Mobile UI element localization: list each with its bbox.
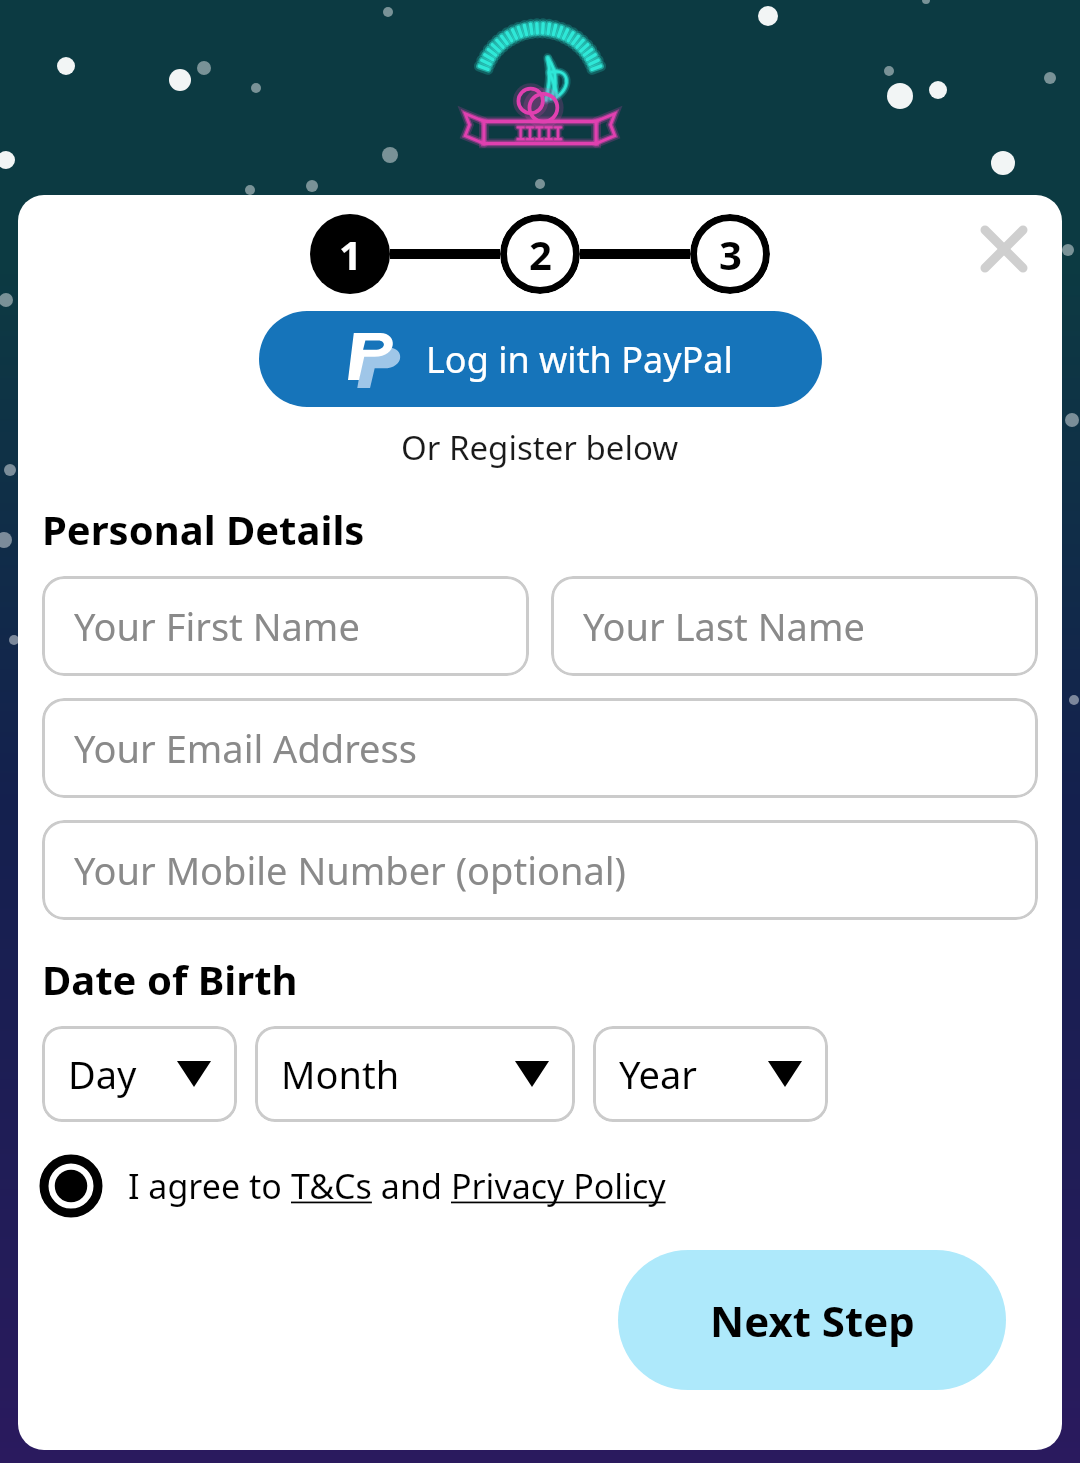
staticText: Personal Details xyxy=(42,502,365,556)
staticText: I agree to xyxy=(128,1163,291,1209)
button[interactable]: Your First Name xyxy=(42,576,529,676)
button[interactable]: Month xyxy=(255,1026,575,1122)
button[interactable]: 2 xyxy=(500,214,580,294)
staticText: Year xyxy=(619,1048,698,1100)
button[interactable]: Your Mobile Number (optional) xyxy=(42,820,1038,920)
staticText: Log in with PayPal xyxy=(426,335,733,384)
staticText: Date of Birth xyxy=(42,952,298,1006)
staticText: Your Email Address xyxy=(74,722,417,774)
staticText: Month xyxy=(281,1048,400,1100)
staticText: Your Mobile Number (optional) xyxy=(74,844,626,896)
button[interactable]: Privacy Policy xyxy=(451,1163,666,1209)
staticText: 3 xyxy=(719,227,742,281)
button[interactable]: Year xyxy=(593,1026,828,1122)
button[interactable]: Your Email Address xyxy=(42,698,1038,798)
staticText: and xyxy=(372,1163,451,1209)
button[interactable]: 3 xyxy=(690,214,770,294)
staticText: Or Register below xyxy=(401,425,679,470)
staticText: Your First Name xyxy=(74,600,360,652)
staticText: Day xyxy=(68,1048,137,1100)
staticText: 2 xyxy=(529,227,552,281)
staticText: Next Step xyxy=(710,1292,915,1349)
button[interactable]: Close xyxy=(968,213,1040,285)
staticText: 1 xyxy=(339,227,362,281)
button[interactable]: Day xyxy=(42,1026,237,1122)
button[interactable]: I agree to xyxy=(42,1146,666,1226)
staticText: Your Last Name xyxy=(583,600,865,652)
button[interactable]: Next Step xyxy=(618,1250,1006,1390)
button[interactable]: Log in with PayPal xyxy=(259,311,822,407)
button[interactable]: T&Cs xyxy=(291,1163,372,1209)
button[interactable]: 1 xyxy=(310,214,390,294)
button[interactable]: Your Last Name xyxy=(551,576,1038,676)
